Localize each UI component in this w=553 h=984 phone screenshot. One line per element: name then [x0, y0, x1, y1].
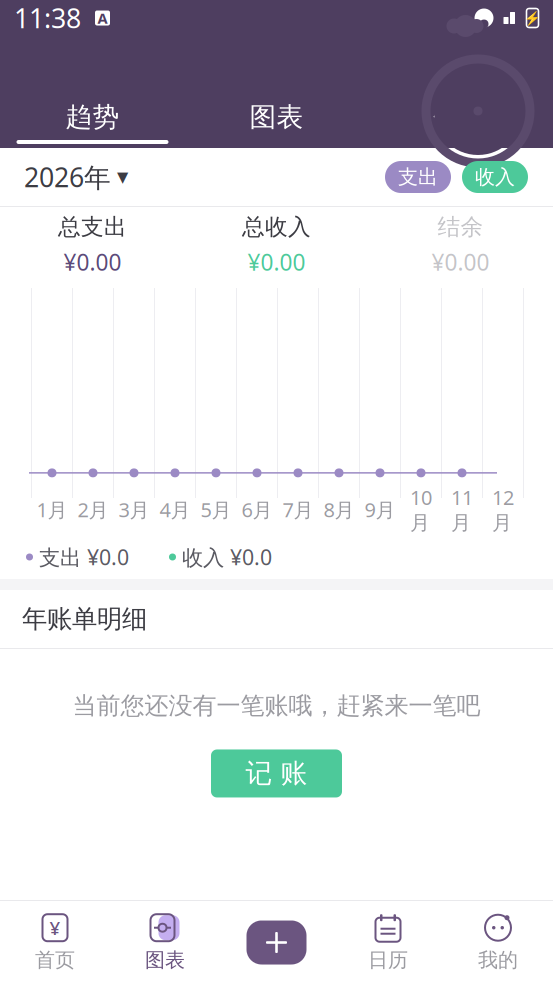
button[interactable]: 收入 [462, 161, 528, 193]
staticText: 3月 [118, 496, 149, 523]
button[interactable]: 我的 [443, 901, 553, 984]
staticText: A [97, 8, 107, 28]
staticText: 支出 ¥0.0 [39, 543, 129, 571]
staticText: ⚡ [524, 10, 541, 26]
staticText: ¥0.00 [431, 247, 489, 277]
staticText: 当前您还没有一笔账哦，赶紧来一笔吧 [72, 691, 480, 720]
staticText: 11:38 [14, 0, 81, 36]
button[interactable]: 2026年 [22, 151, 130, 203]
staticText: ¥0.00 [247, 247, 305, 277]
staticText: ▼ [117, 169, 128, 185]
staticText: ¥ [49, 915, 60, 940]
staticText: 8月 [323, 496, 354, 523]
staticText: 首页 [35, 948, 75, 972]
button[interactable]: 支出 [385, 161, 451, 193]
staticText: 2月 [77, 496, 108, 523]
button[interactable]: ¥ [0, 901, 110, 984]
staticText: 图表 [249, 101, 303, 133]
staticText: 记 账 [245, 757, 307, 790]
staticText: 年账单明细 [22, 603, 147, 634]
staticText: ¥0.00 [63, 247, 121, 277]
staticText: 1月 [36, 496, 67, 523]
button[interactable]: 日历 [333, 901, 443, 984]
staticText: 支出 [398, 165, 438, 189]
button[interactable]: Add record [220, 901, 333, 984]
staticText: 12月 [492, 484, 514, 535]
button[interactable]: 趋势 [0, 94, 184, 148]
button[interactable]: 图表 [184, 94, 368, 148]
button[interactable]: 记 账 [211, 749, 342, 797]
staticText: 10月 [410, 484, 432, 535]
staticText: 收入 [475, 165, 515, 189]
staticText: 趋势 [65, 101, 119, 133]
button[interactable]: 饼图 [368, 94, 552, 148]
staticText: 9月 [364, 496, 395, 523]
staticText: 我的 [478, 948, 518, 972]
staticText: 图表 [145, 948, 185, 972]
staticText: 收入 ¥0.0 [182, 543, 272, 571]
button[interactable]: 图表 [110, 901, 220, 984]
staticText: 2026年 [24, 159, 111, 195]
staticText: 5月 [200, 496, 231, 523]
staticText: 日历 [368, 948, 408, 972]
staticText: 总支出 [58, 213, 127, 241]
staticText: 6月 [241, 496, 272, 523]
staticText: 11月 [451, 484, 473, 535]
staticText: 4月 [159, 496, 190, 523]
staticText: 总收入 [242, 213, 311, 241]
staticText: 7月 [282, 496, 313, 523]
staticText: 结余 [437, 213, 483, 241]
